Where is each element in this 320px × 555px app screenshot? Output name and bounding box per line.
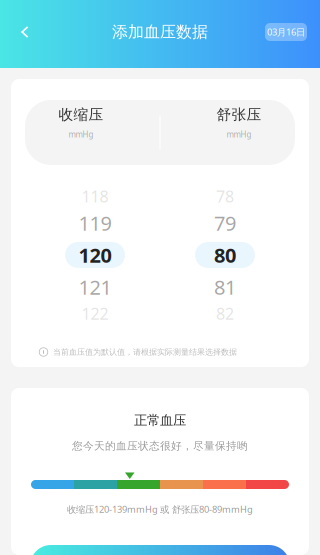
button[interactable]: 03月16日 xyxy=(265,17,307,47)
staticText: 79 xyxy=(214,210,236,236)
staticText: mmHg xyxy=(68,129,93,140)
staticText: 119 xyxy=(78,210,111,236)
button[interactable]: 保存 xyxy=(30,545,290,555)
staticText: 03月16日 xyxy=(267,26,305,38)
staticText: 121 xyxy=(78,274,111,300)
staticText: 82 xyxy=(216,303,234,324)
staticText: 添加血压数据 xyxy=(112,22,208,42)
staticText: 118 xyxy=(81,186,108,207)
button[interactable]: Back xyxy=(12,17,38,47)
staticText: 120 xyxy=(78,242,111,268)
staticText: 78 xyxy=(216,186,234,207)
staticText: 80 xyxy=(214,242,236,268)
staticText: 当前血压值为默认值，请根据实际测量结果选择数据 xyxy=(53,347,237,357)
staticText: 122 xyxy=(81,303,108,324)
staticText: 收缩压 xyxy=(58,105,103,123)
staticText: 81 xyxy=(214,274,236,300)
staticText: 收缩压120-139mmHg 或 舒张压80-89mmHg xyxy=(67,503,253,515)
staticText: 正常血压 xyxy=(134,412,186,428)
staticText: mmHg xyxy=(226,129,251,140)
staticText: 您今天的血压状态很好，尽量保持哟 xyxy=(72,439,248,452)
staticText: 舒张压 xyxy=(216,105,261,123)
